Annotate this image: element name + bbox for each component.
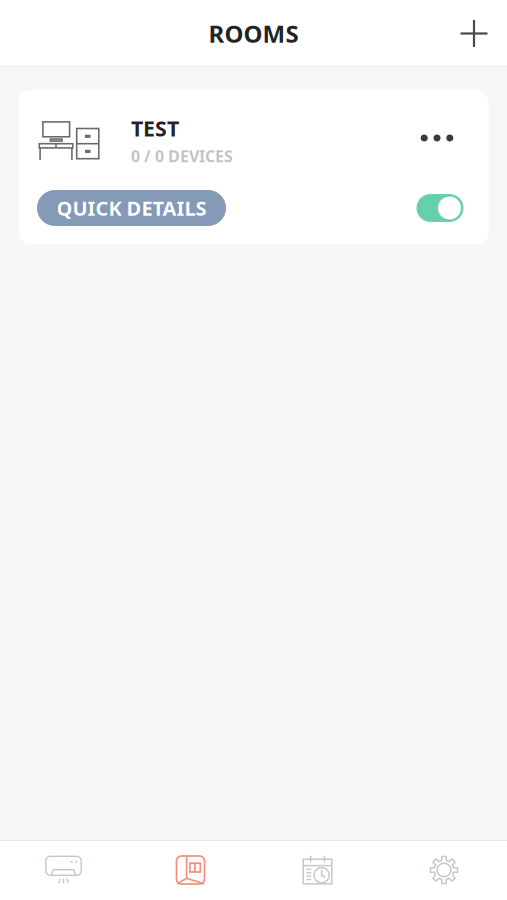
staticText: ROOMS [208, 18, 298, 49]
button[interactable]: Schedule [254, 840, 381, 900]
staticText: TEST [131, 114, 179, 142]
button[interactable]: Power [416, 194, 463, 222]
staticText: QUICK DETAILS [56, 195, 206, 221]
button[interactable]: Climate [0, 840, 127, 900]
staticText: 0 / 0 DEVICES [131, 145, 233, 166]
button[interactable]: QUICK DETAILS [37, 190, 226, 226]
button[interactable]: Add room [446, 5, 502, 61]
button[interactable]: Room options [418, 127, 455, 149]
button[interactable]: Settings [381, 840, 507, 900]
button[interactable]: Rooms [127, 840, 254, 900]
